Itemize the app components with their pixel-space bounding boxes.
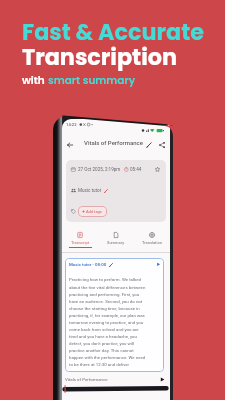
button[interactable]: Summary	[98, 229, 134, 255]
staticText: Summary	[107, 240, 125, 245]
staticText: Transcription	[22, 42, 177, 73]
button[interactable]: Back	[65, 140, 75, 150]
staticText: Translation	[142, 240, 162, 245]
button[interactable]: Edit	[144, 140, 154, 150]
button[interactable]: Add tags	[78, 206, 107, 217]
staticText: 14:22	[66, 122, 77, 127]
button[interactable]: Translation	[134, 229, 170, 255]
staticText: smart summary	[48, 73, 136, 88]
staticText: Vitals of Performance	[84, 139, 143, 146]
staticText: 05:44	[130, 167, 142, 172]
staticText: Music tutor - 08:00	[69, 262, 107, 267]
button[interactable]: Transcript	[62, 229, 98, 255]
staticText: Music tutor	[78, 188, 102, 193]
staticText: Transcript	[71, 240, 89, 245]
staticText: Practicing how to perform. We talked abo…	[69, 277, 147, 367]
button[interactable]: Play	[158, 375, 166, 383]
staticText: Vitals of Performance	[65, 377, 108, 382]
staticText: Add tags	[86, 209, 102, 214]
button[interactable]: Favourite	[152, 164, 162, 174]
staticText: Fast & Accurate	[22, 17, 204, 48]
button[interactable]: Share	[157, 140, 167, 150]
staticText: 27 Oct 2025, 2:19pm	[78, 167, 121, 172]
staticText: with	[22, 73, 48, 88]
